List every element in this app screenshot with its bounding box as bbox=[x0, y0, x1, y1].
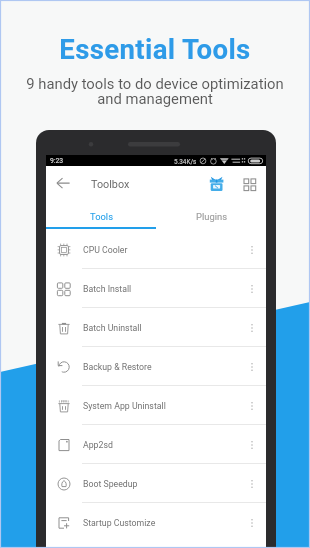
button[interactable]: Grid view bbox=[241, 175, 259, 193]
staticText: Backup & Restore bbox=[83, 362, 152, 372]
button[interactable]: App2sd bbox=[46, 425, 266, 464]
staticText: 9:23 bbox=[50, 157, 64, 165]
button[interactable]: Backup & Restore bbox=[46, 347, 266, 386]
button[interactable]: System App Uninstall bbox=[46, 386, 266, 425]
button[interactable]: Gifts bbox=[203, 173, 223, 193]
button[interactable]: Boot Speedup bbox=[46, 464, 266, 503]
staticText: Tools bbox=[90, 211, 113, 222]
staticText: Startup Customize bbox=[83, 518, 156, 528]
staticText: Batch Uninstall bbox=[83, 323, 142, 333]
staticText: Toolbox bbox=[91, 178, 130, 191]
button[interactable]: Startup Customize bbox=[46, 503, 266, 542]
staticText: CPU Cooler bbox=[83, 245, 128, 255]
button[interactable]: Back bbox=[51, 172, 73, 194]
staticText: System App Uninstall bbox=[83, 401, 166, 411]
button[interactable]: Plugins bbox=[156, 192, 266, 227]
staticText: 5.34K/s bbox=[174, 158, 197, 166]
button[interactable]: Batch Install bbox=[46, 269, 266, 308]
staticText: 9 handy tools to do device optimization … bbox=[26, 75, 284, 108]
button[interactable]: Tools bbox=[46, 192, 156, 227]
staticText: App2sd bbox=[83, 440, 113, 450]
staticText: Essential Tools bbox=[59, 33, 251, 65]
staticText: Plugins bbox=[196, 211, 227, 222]
button[interactable]: Batch Uninstall bbox=[46, 308, 266, 347]
button[interactable]: CPU Cooler bbox=[46, 230, 266, 269]
staticText: Batch Install bbox=[83, 284, 132, 294]
staticText: Boot Speedup bbox=[83, 479, 138, 489]
